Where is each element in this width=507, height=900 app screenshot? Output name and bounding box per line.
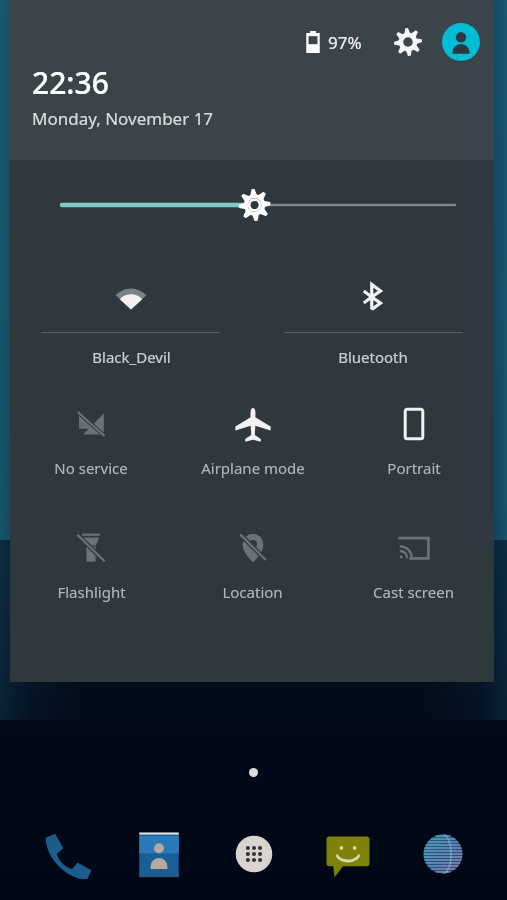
staticText: Airplane mode <box>201 458 305 478</box>
button[interactable]: Portrait <box>333 392 494 516</box>
staticText: Portrait <box>387 458 441 478</box>
button[interactable]: Apps <box>218 818 290 890</box>
staticText: Location <box>222 582 283 602</box>
staticText: Black_Devil <box>92 347 171 367</box>
staticText: Flashlight <box>57 582 126 602</box>
button[interactable]: Brightness <box>10 160 494 260</box>
button[interactable]: Phone <box>29 818 101 890</box>
button[interactable]: Location <box>172 516 333 640</box>
button[interactable]: Black_Devil <box>10 260 252 392</box>
staticText: No service <box>54 458 128 478</box>
button[interactable]: Contacts <box>123 818 195 890</box>
staticText: Monday, November 17 <box>32 107 214 130</box>
staticText: 22:36 <box>32 62 109 103</box>
staticText: Cast screen <box>373 582 454 602</box>
button[interactable]: Browser <box>407 818 479 890</box>
button[interactable]: No service <box>10 392 172 516</box>
button[interactable]: Bluetooth <box>252 260 494 392</box>
button[interactable]: Settings <box>388 22 428 62</box>
button[interactable]: Airplane mode <box>172 392 333 516</box>
button[interactable]: User profile <box>442 23 480 61</box>
button[interactable]: Cast screen <box>333 516 494 640</box>
button[interactable]: Flashlight <box>10 516 172 640</box>
staticText: 97% <box>328 31 362 54</box>
staticText: Bluetooth <box>338 347 408 367</box>
button[interactable]: Messaging <box>312 818 384 890</box>
